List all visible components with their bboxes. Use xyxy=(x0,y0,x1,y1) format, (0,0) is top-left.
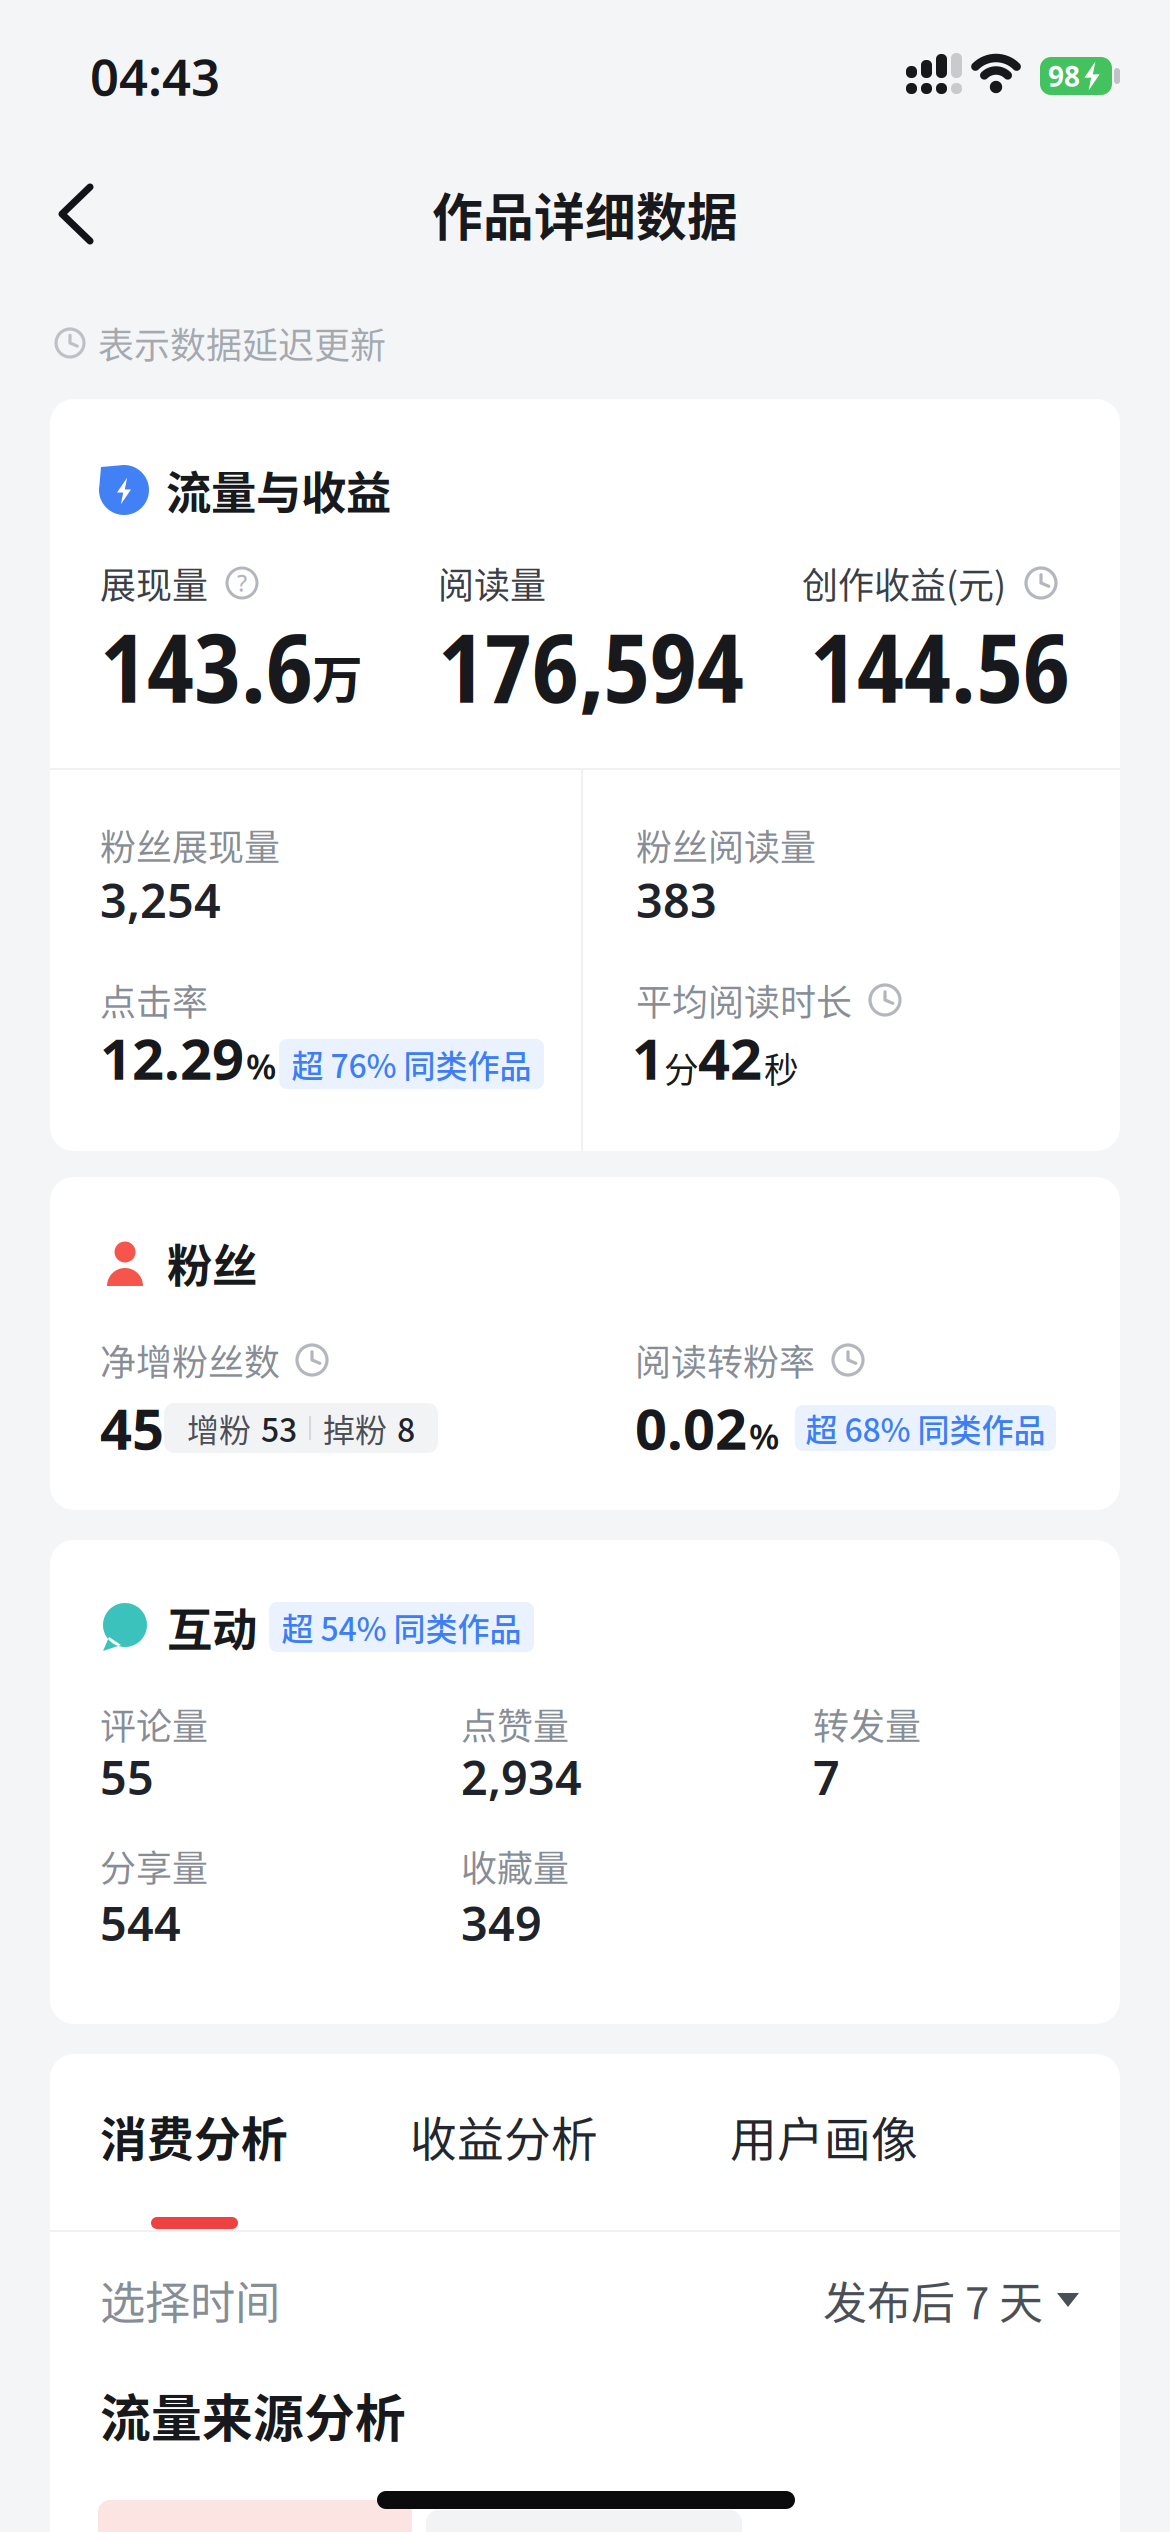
button[interactable]: 返回 xyxy=(40,168,112,260)
staticText: 144.56 xyxy=(810,601,1070,730)
staticText: 45 xyxy=(100,1391,164,1465)
staticText: 分 xyxy=(664,1043,699,1093)
staticText: 互动 xyxy=(167,1594,257,1660)
staticText: 消费分析 xyxy=(100,2102,288,2170)
staticText: 评论量 xyxy=(100,1698,208,1750)
staticText: 发布后 7 天 xyxy=(823,2268,1043,2332)
staticText: 544 xyxy=(100,1892,181,1954)
staticText: 超 54% 同类作品 xyxy=(281,1604,521,1650)
staticText: 收益分析 xyxy=(410,2102,598,2170)
staticText: 143.6 xyxy=(100,601,313,730)
staticText: 7 xyxy=(813,1746,840,1808)
staticText: 掉粉 xyxy=(323,1405,387,1451)
staticText: 0.02 xyxy=(635,1391,747,1465)
staticText: 粉丝 xyxy=(167,1230,257,1296)
staticText: ? xyxy=(237,568,247,598)
staticText: 展现量 xyxy=(100,557,208,609)
staticText: 流量来源分析 xyxy=(100,2378,406,2452)
staticText: 42 xyxy=(698,1021,762,1095)
button[interactable]: 消费分析 xyxy=(100,2096,330,2176)
staticText: 349 xyxy=(461,1892,542,1954)
staticText: 2,934 xyxy=(461,1746,582,1808)
staticText: 平均阅读时长 xyxy=(636,974,852,1026)
staticText: 增粉 xyxy=(187,1405,251,1451)
staticText: 选择时间 xyxy=(100,2267,280,2333)
staticText: 阅读转粉率 xyxy=(635,1334,815,1386)
staticText: 超 76% 同类作品 xyxy=(291,1041,531,1087)
button[interactable]: 收益分析 xyxy=(410,2096,640,2176)
staticText: 超 68% 同类作品 xyxy=(805,1405,1045,1451)
staticText: 粉丝阅读量 xyxy=(636,819,816,871)
staticText: % xyxy=(749,1413,779,1459)
staticText: 万 xyxy=(312,639,363,713)
staticText: 55 xyxy=(100,1746,154,1808)
staticText: 3,254 xyxy=(100,869,221,931)
staticText: 176,594 xyxy=(438,601,744,730)
staticText: 表示数据延迟更新 xyxy=(98,317,386,369)
staticText: 流量与收益 xyxy=(166,457,391,523)
staticText: 383 xyxy=(636,869,717,931)
staticText: 秒 xyxy=(764,1043,799,1093)
staticText: 53 xyxy=(261,1405,297,1451)
staticText: 1 xyxy=(632,1021,664,1095)
staticText: 分享量 xyxy=(100,1840,208,1892)
staticText: 12.29 xyxy=(100,1021,244,1095)
button[interactable]: 展现量说明 xyxy=(224,565,260,601)
staticText: 作品详细数据 xyxy=(432,177,738,251)
staticText: 净增粉丝数 xyxy=(100,1334,280,1386)
button[interactable]: 用户画像 xyxy=(730,2096,960,2176)
staticText: 点击率 xyxy=(100,974,208,1026)
staticText: % xyxy=(246,1043,276,1089)
staticText: 创作收益(元) xyxy=(802,557,1006,609)
staticText: 用户画像 xyxy=(730,2102,918,2170)
staticText: 98 xyxy=(1048,57,1080,95)
button[interactable]: 发布后 7 天 xyxy=(823,2268,1079,2332)
staticText: 阅读量 xyxy=(438,557,546,609)
staticText: 收藏量 xyxy=(461,1840,569,1892)
staticText: 点赞量 xyxy=(461,1698,569,1750)
staticText: 8 xyxy=(397,1405,415,1451)
staticText: 转发量 xyxy=(813,1698,921,1750)
staticText: 04:43 xyxy=(90,42,220,110)
staticText: 粉丝展现量 xyxy=(100,819,280,871)
